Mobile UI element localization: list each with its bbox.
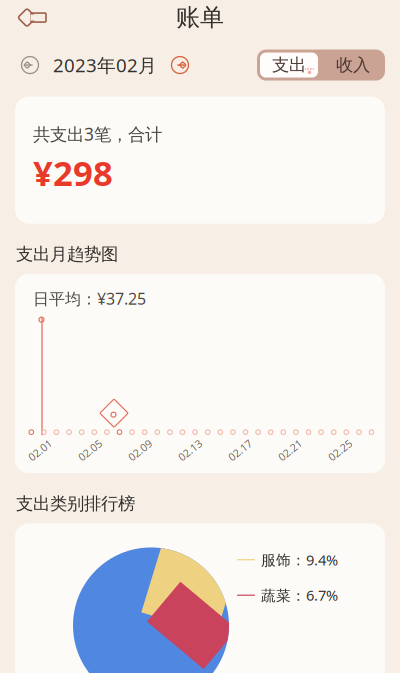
staticText: 支出类别排行榜 <box>16 493 135 514</box>
staticText: 账单 <box>176 3 224 32</box>
staticText: 服饰：9.4% <box>261 550 338 569</box>
staticText: 收入 <box>336 54 370 76</box>
button[interactable]: 上一月 <box>15 50 45 80</box>
staticText: 2023年02月 <box>53 53 157 77</box>
staticText: ¥298 <box>33 150 113 196</box>
staticText: 02.17 <box>226 443 253 457</box>
staticText: 日平均：¥37.25 <box>33 288 146 309</box>
button[interactable]: 下一月 <box>165 50 195 80</box>
staticText: 支出 <box>272 54 306 76</box>
button[interactable]: 返回 <box>8 0 58 37</box>
staticText: 02.21 <box>276 443 303 457</box>
staticText: 共支出3笔，合计 <box>33 123 162 146</box>
button[interactable]: 支出 <box>257 50 321 81</box>
staticText: 02.09 <box>126 443 153 457</box>
staticText: 蔬菜：6.7% <box>261 585 338 605</box>
staticText: 02.05 <box>76 443 103 457</box>
staticText: 02.01 <box>26 443 53 457</box>
staticText: 支出月趋势图 <box>16 244 118 265</box>
staticText: 02.13 <box>176 443 203 457</box>
staticText: 02.25 <box>326 443 353 457</box>
button[interactable]: 收入 <box>321 50 385 81</box>
